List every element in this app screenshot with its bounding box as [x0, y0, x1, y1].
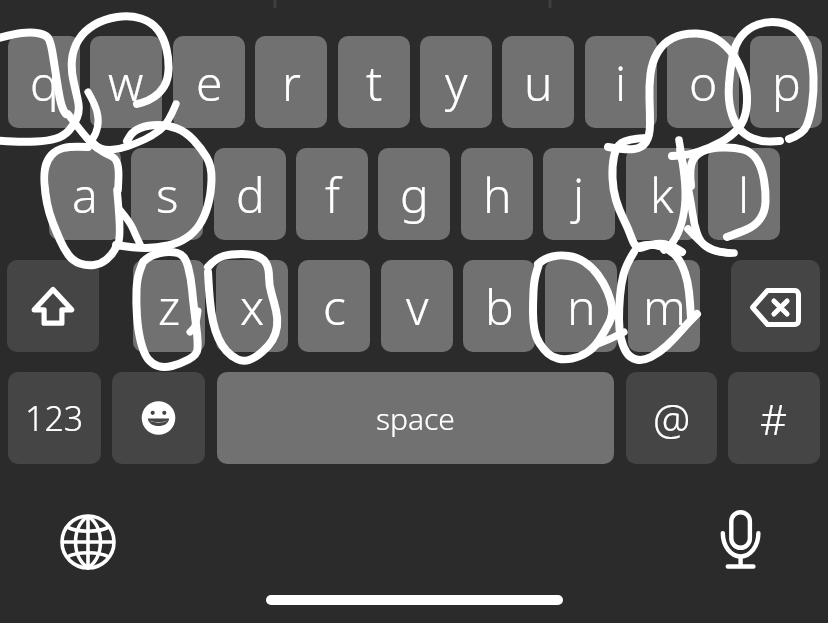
staticText: space — [376, 398, 455, 439]
button[interactable]: k — [626, 148, 698, 240]
button[interactable]: w — [90, 36, 162, 128]
staticText: c — [323, 274, 346, 339]
button[interactable]: p — [750, 36, 822, 128]
button[interactable]: a — [49, 148, 121, 240]
staticText: l — [738, 162, 750, 227]
staticText: o — [689, 50, 718, 115]
button[interactable]: 123 — [8, 372, 101, 464]
button[interactable]: v — [381, 260, 453, 352]
staticText: h — [483, 162, 512, 227]
button[interactable]: Voice input — [708, 508, 773, 573]
staticText: m — [643, 274, 686, 339]
button[interactable]: l — [708, 148, 780, 240]
staticText: k — [650, 162, 674, 227]
staticText: # — [760, 390, 788, 447]
staticText: t — [366, 50, 383, 115]
staticText: u — [524, 50, 553, 115]
button[interactable]: i — [585, 36, 657, 128]
staticText: 123 — [25, 395, 84, 441]
button[interactable]: g — [378, 148, 450, 240]
button[interactable]: space — [217, 372, 614, 464]
button[interactable]: z — [133, 260, 205, 352]
button[interactable]: t — [338, 36, 410, 128]
staticText: g — [400, 162, 429, 227]
staticText: a — [72, 162, 98, 227]
button[interactable]: Emoji — [112, 372, 205, 464]
staticText: v — [406, 274, 429, 339]
button[interactable]: o — [667, 36, 739, 128]
staticText: f — [325, 162, 340, 227]
button[interactable]: m — [628, 260, 700, 352]
button[interactable]: # — [728, 372, 820, 464]
staticText: e — [196, 50, 223, 115]
staticText: d — [236, 162, 265, 227]
button[interactable]: Change keyboard language — [56, 510, 120, 574]
staticText: i — [615, 50, 627, 115]
staticText: s — [156, 162, 179, 227]
staticText: b — [485, 274, 514, 339]
button[interactable]: s — [131, 148, 203, 240]
staticText: q — [30, 50, 59, 115]
staticText: p — [772, 50, 801, 115]
button[interactable]: y — [420, 36, 492, 128]
button[interactable]: Backspace — [731, 260, 820, 352]
staticText: y — [445, 50, 468, 115]
button[interactable]: @ — [626, 372, 717, 464]
button[interactable]: n — [545, 260, 617, 352]
staticText: n — [567, 274, 596, 339]
button[interactable]: j — [543, 148, 615, 240]
staticText: @ — [653, 390, 691, 447]
staticText: w — [108, 50, 144, 115]
staticText: z — [158, 274, 181, 339]
button[interactable]: r — [255, 36, 327, 128]
staticText: x — [240, 274, 265, 339]
button[interactable]: c — [298, 260, 370, 352]
button[interactable]: x — [216, 260, 288, 352]
button[interactable]: d — [214, 148, 286, 240]
staticText: r — [282, 50, 301, 115]
button[interactable]: h — [461, 148, 533, 240]
button[interactable]: Shift — [7, 260, 99, 352]
button[interactable]: u — [502, 36, 574, 128]
staticText: j — [573, 162, 585, 227]
button[interactable]: b — [463, 260, 535, 352]
button[interactable]: f — [296, 148, 368, 240]
button[interactable]: q — [8, 36, 80, 128]
button[interactable]: e — [173, 36, 245, 128]
